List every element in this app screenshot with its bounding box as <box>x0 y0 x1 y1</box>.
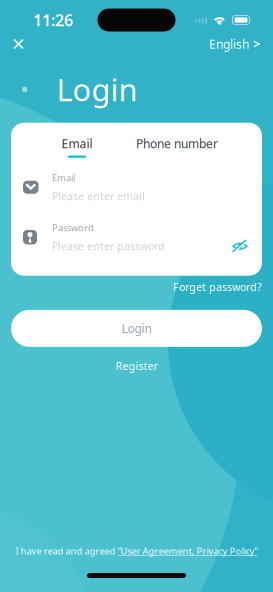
staticText: Please enter password <box>52 239 165 253</box>
staticText: Email <box>52 171 75 184</box>
staticText: Password <box>52 221 94 234</box>
button[interactable]: Close <box>8 33 29 54</box>
staticText: “User Agreement, Privacy Policy” <box>117 545 257 557</box>
staticText: I have read and agreed <box>15 545 117 557</box>
staticText: Login <box>56 69 137 110</box>
button[interactable]: Phone number <box>127 135 227 159</box>
button[interactable]: Login <box>11 310 262 347</box>
staticText: Please enter email <box>52 189 145 203</box>
staticText: Forget password? <box>173 280 262 294</box>
staticText: Register <box>115 359 157 373</box>
button[interactable]: Email <box>38 135 116 159</box>
staticText: 11:26 <box>33 9 73 31</box>
staticText: Email <box>61 136 92 151</box>
staticText: English <box>209 36 249 52</box>
button[interactable]: Forget password? <box>173 280 262 294</box>
staticText: Login <box>121 320 151 336</box>
button[interactable]: “User Agreement, Privacy Policy” <box>117 545 257 557</box>
button[interactable]: English <box>204 31 265 57</box>
button[interactable]: Register <box>109 353 163 379</box>
button[interactable]: Show password <box>232 240 248 253</box>
staticText: Phone number <box>136 136 218 151</box>
